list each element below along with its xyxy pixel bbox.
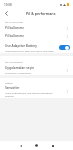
staticText: Pil kullanımı — [5, 34, 24, 38]
button[interactable]: Home — [30, 141, 43, 150]
button[interactable]: Pil kullanımı — [0, 32, 73, 39]
button[interactable]: Back — [14, 141, 27, 150]
staticText: Pil & performans — [26, 11, 56, 16]
staticText: Limit battery for apps you don't use oft… — [5, 49, 54, 52]
button[interactable]: Recent apps — [46, 141, 59, 150]
staticText: Sensörler — [5, 86, 20, 90]
button[interactable]: Pil kullanımı — [0, 24, 73, 31]
staticText: DİĞER — [5, 81, 13, 84]
staticText: Kısıtlanan 4 uygulama — [5, 71, 31, 74]
staticText: Pil kullanımı — [5, 26, 24, 30]
staticText: Yakın uygulamalar için sensör algılamayı… — [5, 91, 53, 97]
button[interactable]: Uygulamaları seçin — [0, 64, 73, 75]
button[interactable]: Use Adaptive Battery — [0, 42, 73, 53]
button[interactable]: Back — [0, 9, 12, 18]
staticText: 10:08 — [4, 3, 12, 7]
button[interactable]: Sensörler — [0, 85, 73, 97]
staticText: Use Adaptive Battery — [5, 44, 38, 48]
staticText: PİL KULLANIMI — [5, 20, 23, 23]
staticText: PİL TASARRUFU — [5, 60, 24, 63]
staticText: Uygulamaları seçin — [5, 66, 35, 70]
